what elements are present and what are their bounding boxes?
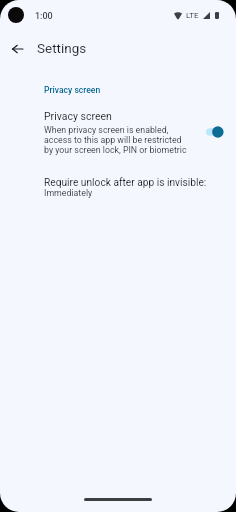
staticText: Settings	[37, 40, 87, 56]
staticText: When privacy screen is enabled, access t…	[44, 125, 187, 155]
button[interactable]: Back	[5, 37, 29, 61]
staticText: Privacy screen	[44, 110, 112, 122]
button[interactable]: Privacy screen	[0, 110, 236, 155]
staticText: LTE	[186, 11, 199, 20]
staticText: Require unlock after app is invisible:	[44, 177, 207, 189]
staticText: Immediately	[44, 188, 93, 198]
button[interactable]: Privacy screen toggle	[206, 125, 227, 139]
staticText: 1:00	[35, 11, 53, 22]
staticText: Privacy screen	[44, 85, 101, 95]
button[interactable]: Require unlock after app is invisible:	[0, 172, 236, 206]
